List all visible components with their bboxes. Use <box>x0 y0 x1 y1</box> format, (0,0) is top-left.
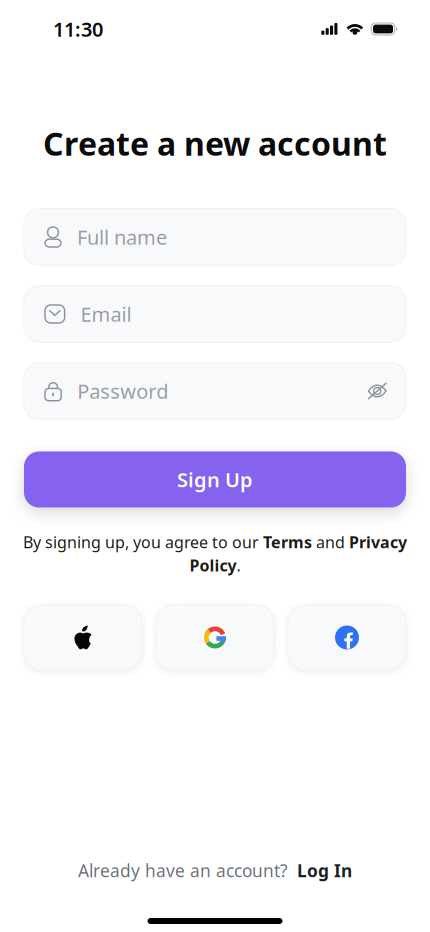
staticText: 11:30 <box>53 16 103 42</box>
staticText: Create a new account <box>43 122 387 164</box>
staticText: Policy. <box>189 555 240 576</box>
button[interactable]: Continue with Apple <box>24 605 142 670</box>
staticText: Full name <box>77 224 167 250</box>
button[interactable]: Sign Up <box>24 451 406 507</box>
button[interactable]: Already have an account? <box>64 851 366 890</box>
staticText: By signing up, you agree to our Terms an… <box>23 531 407 553</box>
staticText: Password <box>77 378 168 404</box>
staticText: Sign Up <box>177 466 253 493</box>
staticText: Email <box>81 301 132 327</box>
button[interactable]: Continue with Facebook <box>288 605 406 670</box>
staticText: Log In <box>297 859 352 882</box>
button[interactable]: Continue with Google <box>156 605 274 670</box>
staticText: Already have an account? <box>78 859 288 882</box>
button[interactable]: Show password <box>367 382 387 399</box>
